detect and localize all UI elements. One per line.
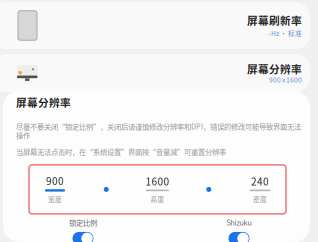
staticText: 900 x 1600 bbox=[269, 75, 302, 84]
staticText: 宽度 bbox=[48, 194, 62, 204]
staticText: Shizuku bbox=[226, 217, 251, 228]
button[interactable]: 1600 bbox=[131, 176, 183, 203]
button[interactable]: 900 bbox=[29, 175, 81, 204]
staticText: 密度 bbox=[253, 194, 267, 204]
staticText: 900 bbox=[46, 173, 64, 188]
staticText: 屏幕分辨率 bbox=[247, 61, 302, 76]
staticText: 屏幕刷新率 bbox=[247, 12, 302, 28]
button[interactable]: 屏幕分辨率 bbox=[0, 54, 310, 92]
button[interactable]: 240 bbox=[234, 176, 286, 203]
button[interactable]: 锁定比例 bbox=[53, 218, 113, 242]
staticText: 锁定比例 bbox=[69, 217, 97, 228]
staticText: 屏幕分辨率 bbox=[16, 94, 71, 110]
staticText: 当屏幕无法点击时，在“系统设置”界面按“音量减”可重置分辨率 bbox=[16, 146, 226, 157]
staticText: - Hz · 标准 bbox=[268, 28, 302, 38]
button[interactable]: Shizuku bbox=[209, 218, 269, 242]
staticText: 240 bbox=[251, 174, 269, 188]
staticText: 尽量不要关闭“锁定比例”，关闭后请谨慎修改分辨率和DPI，错误的修改可能导致界面… bbox=[16, 121, 301, 140]
staticText: 1600 bbox=[145, 174, 169, 188]
staticText: 高度 bbox=[150, 194, 164, 204]
button[interactable]: 屏幕刷新率 bbox=[0, 2, 310, 49]
